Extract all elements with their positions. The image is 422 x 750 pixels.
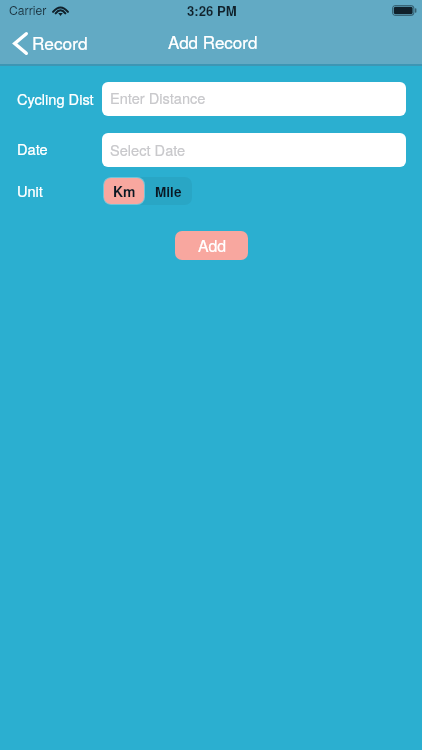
staticText: Mile bbox=[155, 182, 182, 201]
other: Wi-Fi bbox=[52, 5, 69, 16]
button[interactable]: Km bbox=[104, 178, 144, 204]
staticText: Date bbox=[17, 138, 48, 159]
staticText: Km bbox=[113, 181, 136, 201]
button[interactable]: Mile bbox=[145, 177, 192, 205]
other: Back bbox=[13, 32, 28, 55]
button[interactable]: Add bbox=[175, 231, 248, 260]
button[interactable]: Enter Distance bbox=[102, 82, 406, 116]
staticText: Select Date bbox=[110, 139, 186, 160]
button[interactable]: Back bbox=[7, 26, 96, 58]
staticText: Carrier bbox=[9, 1, 47, 18]
button[interactable]: Select Date bbox=[102, 133, 406, 167]
other: Battery bbox=[392, 5, 417, 16]
staticText: Record bbox=[32, 30, 88, 55]
staticText: Unit bbox=[17, 180, 43, 201]
staticText: Enter Distance bbox=[110, 87, 206, 108]
staticText: Add Record bbox=[168, 29, 258, 53]
staticText: Add bbox=[198, 234, 226, 257]
staticText: 3:26 PM bbox=[187, 1, 237, 20]
staticText: Cycling Dist bbox=[17, 88, 94, 109]
